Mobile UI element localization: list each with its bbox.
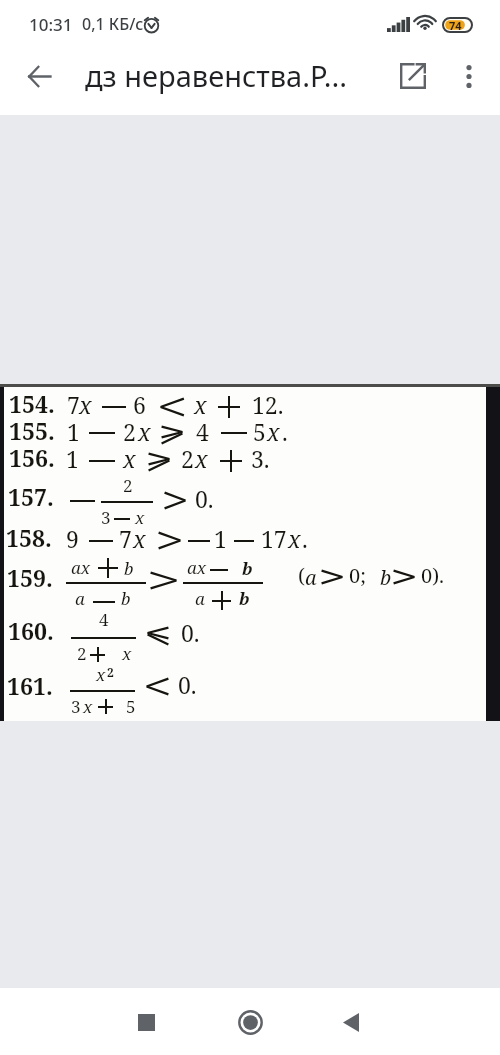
- staticText: ax: [71, 556, 91, 579]
- staticText: 0).: [421, 562, 445, 589]
- staticText: a: [75, 587, 85, 610]
- staticText: 2: [181, 443, 194, 474]
- staticText: 1: [214, 523, 227, 554]
- staticText: 161.: [7, 670, 53, 701]
- staticText: 154.: [9, 388, 55, 419]
- staticText: .: [302, 523, 308, 554]
- staticText: b: [124, 557, 134, 580]
- button[interactable]: Back: [15, 52, 63, 100]
- staticText: 74: [449, 18, 462, 33]
- staticText: 5: [126, 695, 136, 718]
- staticText: .: [282, 416, 288, 447]
- button[interactable]: Recent apps: [116, 992, 176, 1052]
- staticText: 0.: [181, 617, 200, 648]
- staticText: 0.: [195, 483, 214, 514]
- staticText: 7: [119, 523, 132, 554]
- staticText: 157.: [8, 481, 54, 512]
- staticText: a: [305, 564, 317, 591]
- staticText: x: [138, 416, 151, 447]
- staticText: x: [133, 523, 146, 554]
- staticText: x: [288, 523, 301, 554]
- staticText: 3: [101, 506, 111, 529]
- button[interactable]: Open in new window: [389, 52, 437, 100]
- staticText: 158.: [6, 522, 52, 553]
- staticText: 7: [67, 389, 80, 420]
- staticText: (: [298, 562, 305, 589]
- staticText: ax: [187, 556, 207, 579]
- staticText: дз неравенства.Р...: [85, 56, 397, 95]
- staticText: 0,1 КБ/с: [82, 13, 144, 35]
- staticText: b: [380, 564, 392, 591]
- staticText: a: [195, 587, 205, 610]
- staticText: x: [135, 506, 145, 529]
- staticText: x: [79, 389, 92, 420]
- staticText: x: [195, 443, 208, 474]
- staticText: 0.: [178, 669, 197, 700]
- staticText: x: [83, 695, 93, 718]
- staticText: x: [96, 663, 106, 686]
- staticText: 5: [253, 416, 266, 447]
- staticText: x: [123, 443, 136, 474]
- staticText: 3.: [251, 443, 270, 474]
- staticText: 160.: [8, 615, 54, 646]
- staticText: 2: [123, 474, 133, 497]
- button[interactable]: Home: [220, 992, 280, 1052]
- staticText: x: [194, 389, 207, 420]
- staticText: 2: [77, 642, 87, 665]
- staticText: 0;: [349, 562, 366, 589]
- staticText: 4: [99, 608, 109, 631]
- staticText: 155.: [9, 415, 55, 446]
- staticText: 3: [71, 695, 81, 718]
- staticText: x: [267, 416, 280, 447]
- staticText: 9: [66, 523, 79, 554]
- staticText: b: [121, 587, 131, 610]
- staticText: 17: [261, 523, 287, 554]
- button[interactable]: Back: [321, 992, 381, 1052]
- staticText: 10:31: [29, 13, 73, 36]
- staticText: b: [242, 557, 253, 580]
- staticText: 2: [107, 664, 114, 680]
- staticText: 159.: [7, 562, 53, 593]
- staticText: 1: [66, 443, 79, 474]
- staticText: x: [122, 642, 132, 665]
- staticText: 2: [123, 416, 136, 447]
- staticText: 12.: [252, 389, 284, 420]
- staticText: 4: [196, 416, 209, 447]
- staticText: 1: [67, 416, 80, 447]
- staticText: b: [239, 587, 250, 610]
- staticText: 156.: [9, 442, 55, 473]
- button[interactable]: More options: [445, 52, 493, 100]
- staticText: 6: [133, 389, 146, 420]
